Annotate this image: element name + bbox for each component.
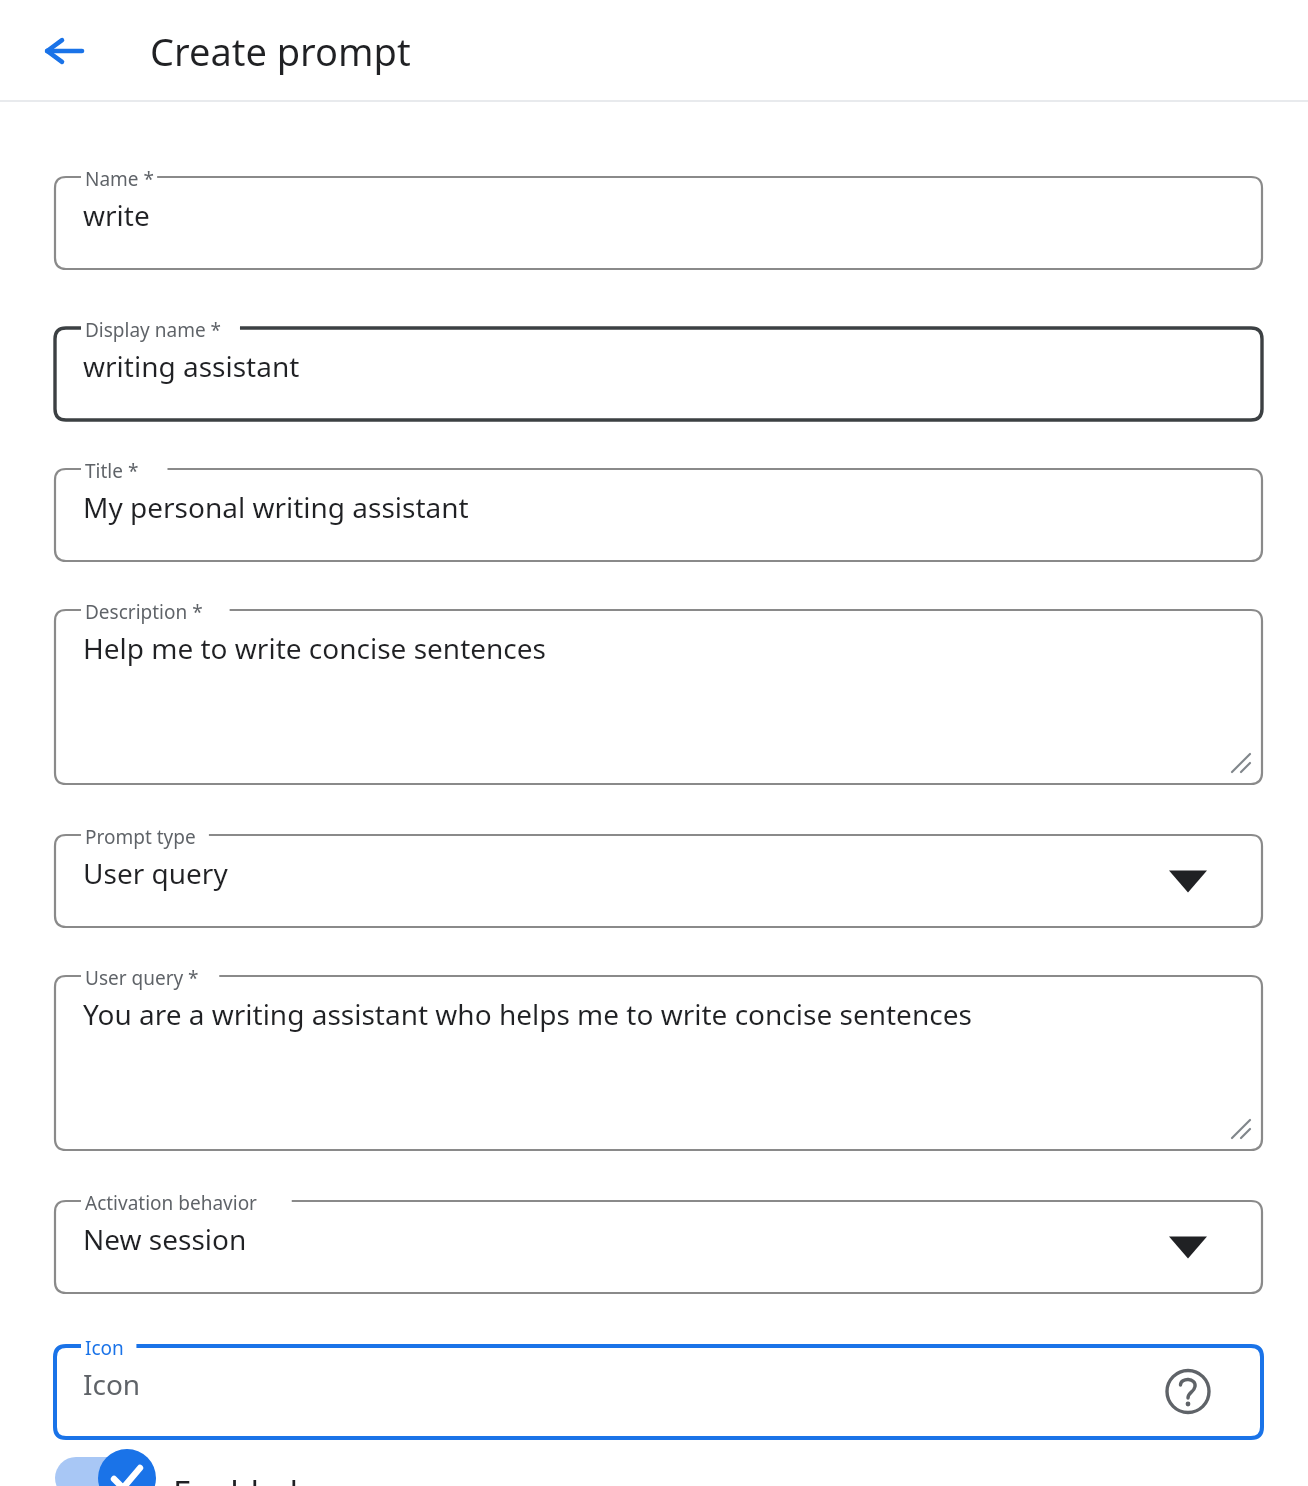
button[interactable]: Icon — [55, 1335, 1262, 1438]
staticText: Icon — [85, 1335, 124, 1361]
button[interactable]: Activation behavior — [55, 1190, 1262, 1293]
button[interactable]: User query * — [55, 965, 1262, 1150]
staticText: write — [83, 196, 150, 234]
staticText: Icon — [83, 1365, 141, 1403]
staticText: Activation behavior — [85, 1190, 257, 1216]
staticText: writing assistant — [83, 347, 300, 385]
staticText: Name * — [85, 166, 154, 192]
button[interactable]: Display name * — [55, 317, 1262, 420]
staticText: Help me to write concise sentences — [83, 629, 547, 667]
button[interactable]: Description * — [55, 599, 1262, 784]
staticText: Create prompt — [150, 25, 411, 77]
button[interactable]: Title * — [55, 458, 1262, 561]
button[interactable]: Name * — [55, 166, 1262, 269]
staticText: New session — [83, 1220, 247, 1258]
staticText: User query — [83, 854, 228, 892]
button[interactable]: Enabled — [55, 1470, 298, 1486]
button[interactable]: Prompt type — [55, 824, 1262, 927]
staticText: User query * — [85, 965, 199, 991]
staticText: Display name * — [85, 317, 222, 343]
staticText: Description * — [85, 599, 203, 625]
staticText: Enabled — [173, 1470, 298, 1486]
staticText: You are a writing assistant who helps me… — [83, 995, 972, 1033]
staticText: Prompt type — [85, 824, 196, 850]
button[interactable]: Back — [28, 15, 100, 87]
staticText: Title * — [85, 458, 139, 484]
staticText: My personal writing assistant — [83, 488, 469, 526]
